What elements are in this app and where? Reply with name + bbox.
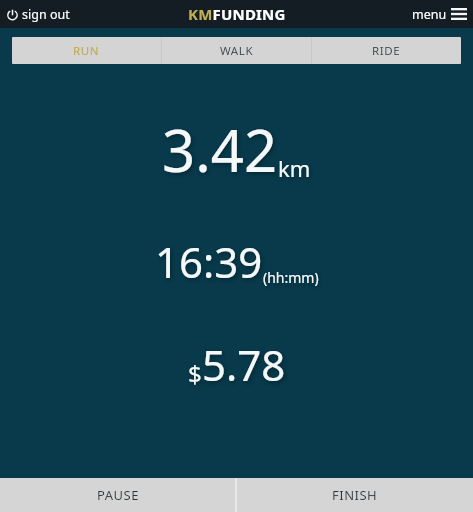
- button[interactable]: RIDE: [312, 37, 461, 64]
- staticText: RUN: [73, 43, 100, 59]
- staticText: KMFUNDING: [188, 4, 286, 24]
- button[interactable]: Menu: [402, 0, 473, 28]
- button[interactable]: FINISH: [237, 478, 473, 512]
- staticText: (hh:mm): [263, 268, 319, 287]
- staticText: 5.78: [202, 336, 286, 393]
- staticText: $: [188, 357, 202, 390]
- staticText: menu: [412, 6, 447, 23]
- staticText: 16:39: [155, 233, 263, 290]
- button[interactable]: WALK: [162, 37, 311, 64]
- button[interactable]: RUN: [12, 37, 161, 64]
- button[interactable]: PAUSE: [0, 478, 235, 512]
- staticText: PAUSE: [97, 486, 139, 504]
- staticText: sign out: [22, 6, 70, 23]
- staticText: km: [278, 153, 311, 183]
- staticText: WALK: [220, 43, 254, 59]
- button[interactable]: sign out: [0, 0, 80, 28]
- staticText: FINISH: [332, 486, 378, 504]
- staticText: 3.42: [162, 110, 278, 189]
- staticText: RIDE: [372, 43, 401, 59]
